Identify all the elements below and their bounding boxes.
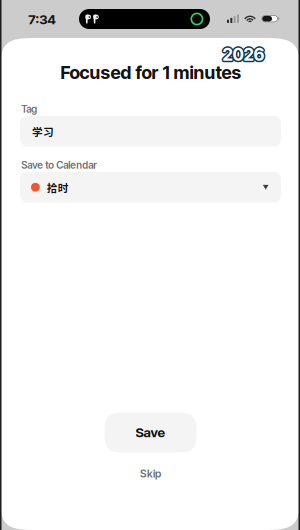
button[interactable]: 拾时: [20, 172, 281, 202]
staticText: Skip: [140, 467, 161, 480]
staticText: 学习: [32, 123, 54, 139]
staticText: 2026: [224, 43, 266, 64]
button[interactable]: Skip: [115, 465, 185, 481]
staticText: 2026: [221, 45, 263, 66]
staticText: 2026: [222, 45, 264, 66]
staticText: Tag: [21, 103, 37, 115]
staticText: 2026: [224, 44, 266, 65]
staticText: Save to Calendar: [21, 159, 97, 171]
staticText: Focused for 1 minutes: [60, 62, 241, 83]
staticText: 2026: [224, 45, 266, 66]
staticText: 2026: [221, 44, 263, 65]
staticText: 7:34: [28, 11, 56, 27]
staticText: Save: [135, 424, 165, 440]
button[interactable]: Save: [104, 412, 196, 452]
staticText: 2026: [221, 43, 263, 64]
staticText: 2026: [222, 43, 264, 64]
staticText: 拾时: [47, 179, 69, 195]
staticText: 2026: [222, 44, 264, 65]
